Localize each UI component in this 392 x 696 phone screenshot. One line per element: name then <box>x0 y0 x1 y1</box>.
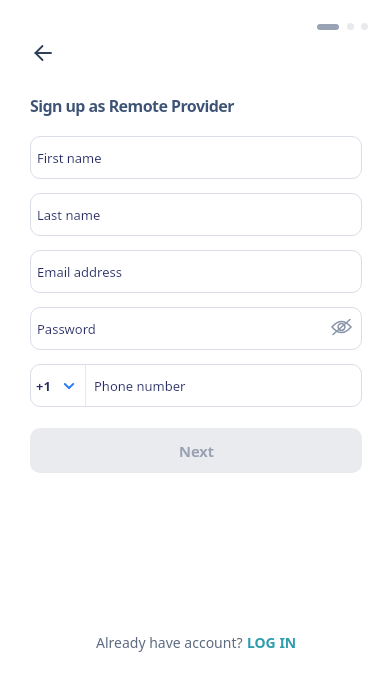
staticText: Last name <box>37 206 101 224</box>
staticText: Phone number <box>94 377 186 395</box>
staticText: First name <box>37 149 102 167</box>
staticText: Sign up as Remote Provider <box>30 95 234 117</box>
button[interactable]: First name <box>30 136 362 179</box>
button[interactable] <box>31 41 55 65</box>
staticText: Next <box>179 441 214 461</box>
button[interactable] <box>331 318 352 336</box>
staticText: Email address <box>37 263 122 281</box>
button[interactable]: Last name <box>30 193 362 236</box>
button[interactable]: Email address <box>30 250 362 293</box>
button[interactable]: Phone number <box>86 364 362 407</box>
staticText: Password <box>37 320 96 338</box>
button[interactable]: LOG IN <box>247 633 297 652</box>
staticText: Already have account? <box>96 633 247 652</box>
button[interactable]: Password <box>30 307 362 350</box>
staticText: +1 <box>36 377 51 395</box>
button[interactable]: Next <box>30 428 362 473</box>
button[interactable]: +1 <box>30 364 85 407</box>
